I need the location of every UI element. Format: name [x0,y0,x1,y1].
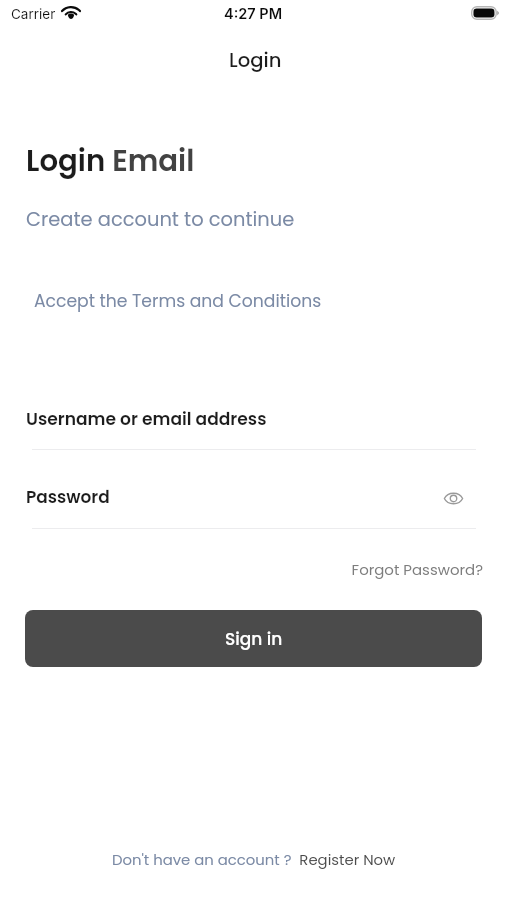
staticText: Create account to continue [26,206,295,233]
button[interactable]: Don't have an account ? Register Now [112,849,396,870]
staticText: Don't have an account ? Register Now [112,849,396,870]
staticText: Login Email [26,140,195,181]
staticText: 4:27 PM [224,5,283,23]
button[interactable]: Forgot Password? [290,559,483,580]
staticText: Forgot Password? [290,559,483,580]
staticText: Login [229,46,282,73]
staticText: Sign in [225,627,283,651]
staticText: Username or email address [26,407,267,431]
staticText: Carrier [11,6,56,22]
staticText: Accept the Terms and Conditions [34,289,322,313]
button[interactable]: Sign in [25,610,482,667]
staticText: Password [26,485,110,509]
button[interactable]: Show password [439,484,468,513]
